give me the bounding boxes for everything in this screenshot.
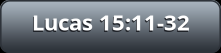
staticText: Lucas 15:11-32 <box>31 8 189 38</box>
button[interactable]: Lucas 15:11-32 <box>0 0 221 53</box>
staticText: Lucas 15:11-32 <box>32 7 190 37</box>
